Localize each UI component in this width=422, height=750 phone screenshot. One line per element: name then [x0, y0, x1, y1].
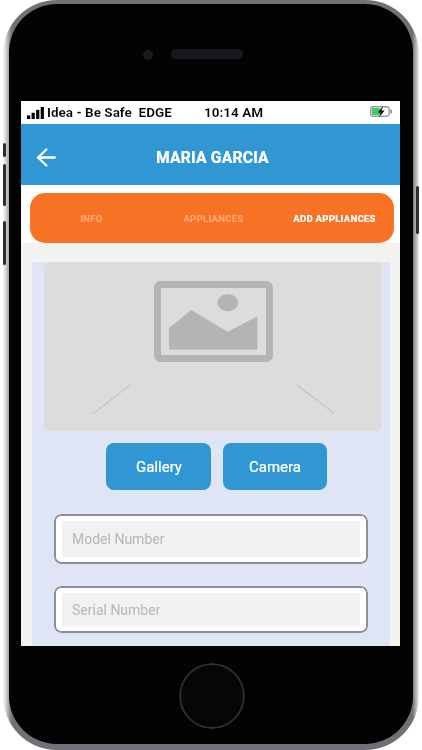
- button[interactable]: Model Number: [54, 514, 368, 564]
- staticText: APPLIANCES: [183, 213, 244, 224]
- button[interactable]: APPLIANCES: [152, 193, 274, 243]
- staticText: Model Number: [72, 531, 165, 547]
- staticText: ADD APPLIANCES: [293, 213, 376, 224]
- button[interactable]: ADD APPLIANCES: [274, 193, 394, 243]
- staticText: Idea - Be Safe EDGE: [47, 104, 172, 120]
- staticText: INFO: [80, 213, 103, 224]
- staticText: 10:14 AM: [204, 104, 264, 120]
- button[interactable]: Camera: [223, 443, 327, 490]
- staticText: Camera: [249, 458, 301, 476]
- staticText: Serial Number: [72, 602, 161, 618]
- staticText: Gallery: [136, 458, 182, 476]
- button[interactable]: Back: [29, 141, 62, 174]
- button[interactable]: INFO: [30, 193, 152, 243]
- button[interactable]: Serial Number: [54, 586, 368, 633]
- button[interactable]: Gallery: [106, 443, 211, 490]
- staticText: MARIA GARCIA: [156, 148, 269, 166]
